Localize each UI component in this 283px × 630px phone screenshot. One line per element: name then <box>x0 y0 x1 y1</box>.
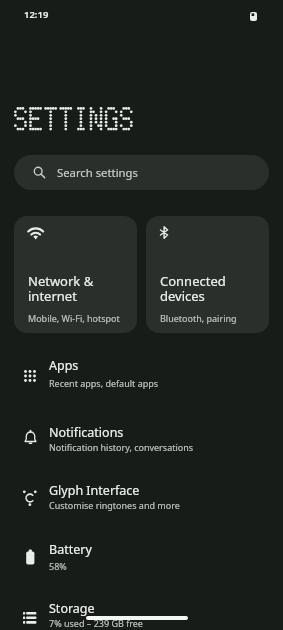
staticText: Recent apps, default apps <box>49 377 159 389</box>
button[interactable]: Storage <box>0 589 283 630</box>
staticText: Bluetooth, pairing <box>160 312 237 324</box>
staticText: Mobile, Wi-Fi, hotspot <box>28 312 120 324</box>
staticText: Notification history, conversations <box>49 441 194 453</box>
button[interactable]: Notifications <box>0 413 283 471</box>
button[interactable]: Battery <box>0 530 283 588</box>
staticText: 7% used – 239 GB free <box>49 617 143 629</box>
staticText: Search settings <box>57 165 138 180</box>
staticText: Customise ringtones and more <box>49 499 180 511</box>
staticText: Apps <box>49 357 79 374</box>
staticText: Glyph Interface <box>49 482 140 499</box>
staticText: Battery <box>49 541 92 558</box>
button[interactable]: Search settings <box>14 155 269 190</box>
staticText: 12:19 <box>24 8 49 21</box>
button[interactable]: Glyph Interface <box>0 471 283 529</box>
staticText: Network & internet <box>28 272 94 305</box>
staticText: 58% <box>49 560 67 572</box>
button[interactable]: Connected devices <box>146 216 269 333</box>
staticText: Notifications <box>49 424 124 441</box>
staticText: Storage <box>49 600 95 617</box>
button[interactable]: Network & internet <box>14 216 137 333</box>
button[interactable]: Apps <box>0 346 283 404</box>
staticText: Connected devices <box>160 272 226 305</box>
